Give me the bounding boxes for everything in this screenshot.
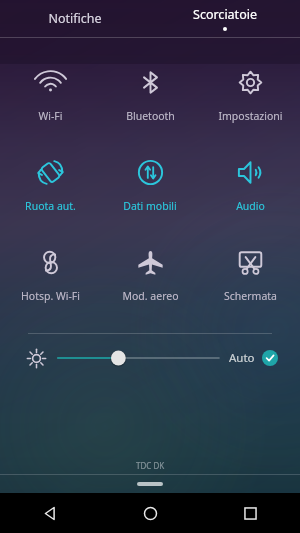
- button[interactable]: Back: [0, 493, 100, 533]
- staticText: Notifiche: [48, 10, 102, 27]
- button[interactable]: Auto: [229, 350, 278, 366]
- button[interactable]: Recent apps: [200, 493, 300, 533]
- button[interactable]: Dati mobili: [100, 141, 200, 231]
- button[interactable]: Ruota aut.: [0, 141, 100, 231]
- button[interactable]: Scorciatoie: [150, 0, 300, 37]
- button[interactable]: Brightness: [22, 344, 50, 372]
- button[interactable]: Schermata: [200, 231, 300, 321]
- staticText: Hotsp. Wi-Fi: [21, 289, 80, 303]
- button[interactable]: Mod. aereo: [100, 231, 200, 321]
- staticText: Mod. aereo: [122, 289, 179, 303]
- staticText: Impostazioni: [218, 109, 283, 123]
- button[interactable]: Home: [100, 493, 200, 533]
- button[interactable]: Bluetooth: [100, 51, 200, 141]
- button[interactable]: [58, 343, 219, 373]
- button[interactable]: Notifiche: [0, 0, 150, 37]
- staticText: Auto: [229, 350, 255, 366]
- button[interactable]: Wi-Fi: [0, 51, 100, 141]
- staticText: Dati mobili: [123, 199, 177, 213]
- staticText: Wi-Fi: [38, 109, 63, 123]
- staticText: Audio: [236, 199, 265, 213]
- staticText: Scorciatoie: [193, 6, 257, 23]
- button[interactable]: Hotsp. Wi-Fi: [0, 231, 100, 321]
- button[interactable]: Impostazioni: [200, 51, 300, 141]
- staticText: Ruota aut.: [25, 199, 76, 213]
- button[interactable]: Audio: [200, 141, 300, 231]
- staticText: TDC DK: [136, 460, 165, 471]
- button[interactable]: Close panel: [0, 475, 300, 493]
- staticText: Schermata: [224, 289, 277, 303]
- staticText: Bluetooth: [126, 109, 175, 123]
